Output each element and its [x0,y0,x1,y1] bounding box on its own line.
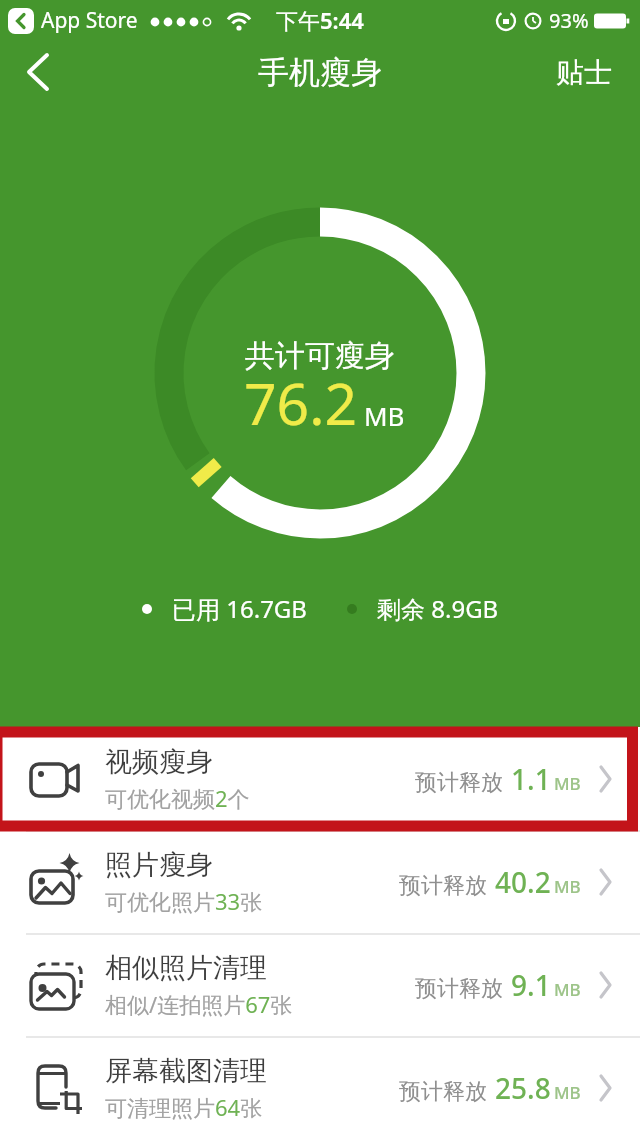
staticText: 预计释放 [399,872,487,900]
staticText: 已用 16.7GB [172,592,307,625]
staticText: 剩余 8.9GB [377,592,499,625]
staticText: 可优化视频2个 [105,783,250,813]
staticText: 可清理照片64张 [105,1092,263,1122]
staticText: MB [554,1081,581,1104]
staticText: 93% [549,7,589,34]
staticText: 76.2 [244,364,358,442]
button[interactable]: 视频瘦身 [0,727,640,830]
staticText: 可优化照片33张 [105,886,263,916]
button[interactable]: 贴士 [556,55,612,90]
staticText: App Store [41,6,138,35]
staticText: 预计释放 [415,975,503,1003]
staticText: 手机瘦身 [258,53,382,92]
staticText: 9.1 [511,966,551,1004]
button[interactable] [18,52,58,92]
staticText: 1.1 [511,760,551,798]
staticText: 40.2 [495,863,551,901]
staticText: MB [554,875,581,898]
staticText: MB [364,398,405,433]
staticText: 预计释放 [399,1078,487,1106]
staticText: 屏幕截图清理 [105,1054,267,1088]
staticText: 25.8 [495,1069,551,1107]
staticText: 贴士 [556,55,612,90]
staticText: 照片瘦身 [105,848,213,882]
staticText: 下午5:44 [276,5,364,35]
staticText: 视频瘦身 [105,745,213,779]
button[interactable]: 相似照片清理 [0,933,640,1036]
button[interactable]: 屏幕截图清理 [0,1036,640,1139]
staticText: 相似/连拍照片67张 [105,989,293,1019]
staticText: 共计可瘦身 [245,337,395,375]
staticText: MB [554,772,581,795]
staticText: 相似照片清理 [105,951,267,985]
button[interactable]: 照片瘦身 [0,830,640,933]
staticText: 预计释放 [415,769,503,797]
staticText: MB [554,978,581,1001]
